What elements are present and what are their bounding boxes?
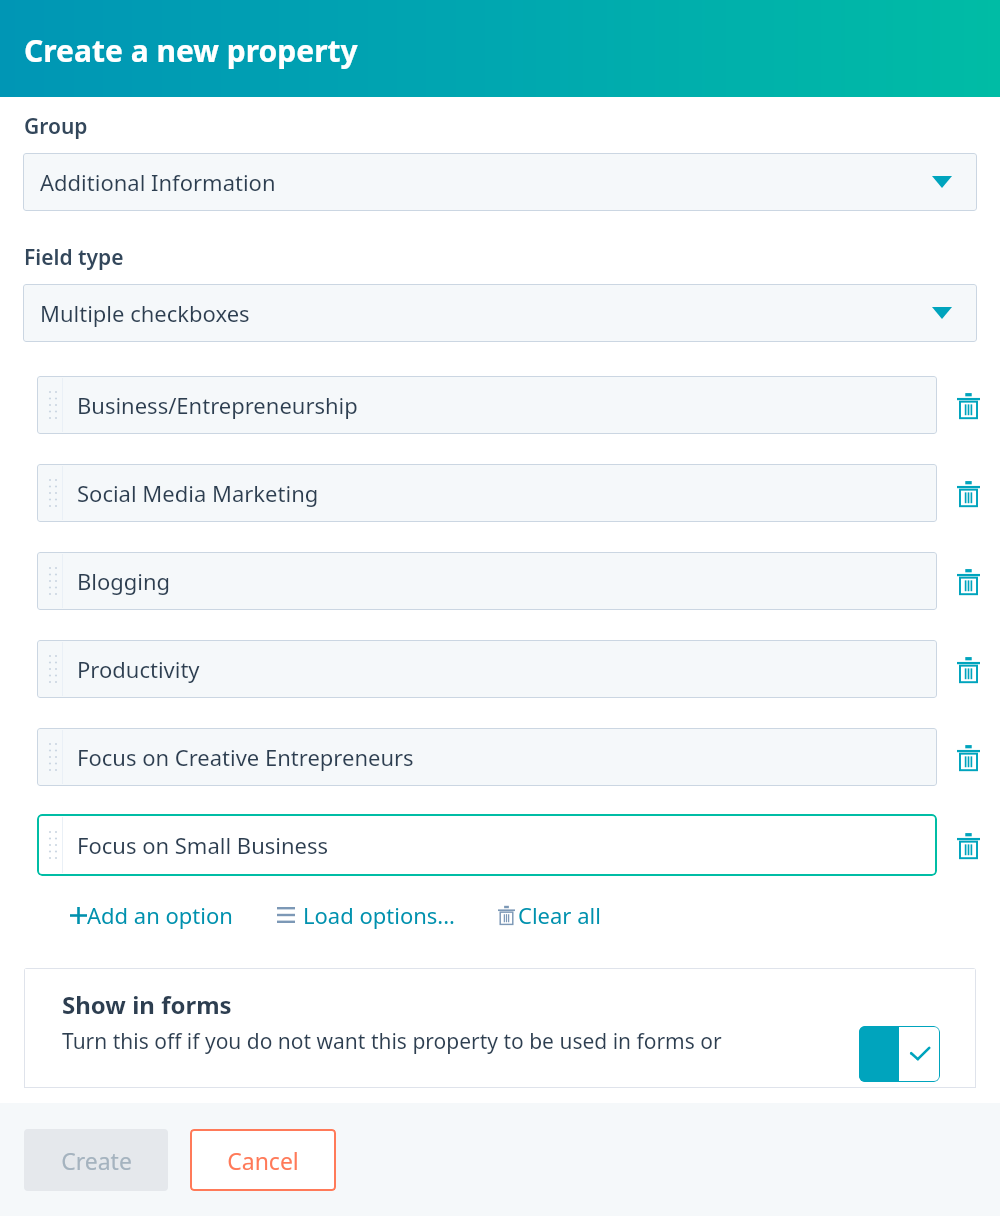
button[interactable]: Productivity	[37, 640, 937, 698]
button[interactable]: Focus on Small Business	[37, 814, 937, 876]
button[interactable]: Delete option Blogging	[937, 550, 1000, 612]
button[interactable]: Social Media Marketing	[37, 464, 937, 522]
button[interactable]: Clear all	[498, 894, 601, 936]
staticText: Business/Entrepreneurship	[77, 390, 358, 420]
button[interactable]: Create	[24, 1129, 168, 1191]
staticText: Create	[61, 1145, 132, 1176]
button[interactable]: Delete option Focus on Small Business	[937, 814, 1000, 876]
button[interactable]: Blogging	[37, 552, 937, 610]
staticText: Field type	[24, 243, 124, 272]
staticText: Group	[24, 112, 88, 141]
button[interactable]: Additional Information	[23, 153, 977, 211]
staticText: Focus on Creative Entrepreneurs	[77, 742, 414, 772]
staticText: Clear all	[518, 900, 601, 930]
staticText: Cancel	[227, 1145, 299, 1176]
staticText: Add an option	[87, 900, 233, 930]
button[interactable]: Delete option Productivity	[937, 638, 1000, 700]
staticText: Show in forms	[62, 988, 232, 1021]
staticText: Focus on Small Business	[77, 830, 329, 860]
button[interactable]: Multiple checkboxes	[23, 284, 977, 342]
button[interactable]: Business/Entrepreneurship	[37, 376, 937, 434]
button[interactable]: Focus on Creative Entrepreneurs	[37, 728, 937, 786]
button[interactable]: Load options...	[277, 894, 456, 936]
staticText: Additional Information	[40, 167, 276, 197]
staticText: Load options...	[303, 900, 456, 930]
staticText: Blogging	[77, 566, 171, 596]
button[interactable]: Cancel	[190, 1129, 336, 1191]
button[interactable]: Delete option Social Media Marketing	[937, 462, 1000, 524]
staticText: Productivity	[77, 654, 200, 684]
staticText: Turn this off if you do not want this pr…	[62, 1027, 722, 1056]
staticText: Social Media Marketing	[77, 478, 319, 508]
staticText: Multiple checkboxes	[40, 298, 250, 328]
button[interactable]: Delete option Focus on Creative Entrepre…	[937, 726, 1000, 788]
button[interactable]: Add an option	[70, 894, 233, 936]
staticText: Create a new property	[24, 30, 358, 71]
button[interactable]: Show in forms toggle, on	[859, 1026, 940, 1082]
button[interactable]: Delete option Business/Entrepreneurship	[937, 374, 1000, 436]
